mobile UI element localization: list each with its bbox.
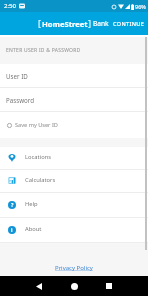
staticText: [ xyxy=(38,17,42,30)
staticText: Calculators xyxy=(25,176,56,184)
button[interactable]: Save my User ID xyxy=(0,112,148,138)
staticText: ? xyxy=(11,202,14,209)
staticText: HomeStreet xyxy=(42,19,88,29)
button[interactable]: Calculators xyxy=(0,170,148,193)
staticText: CONTINUE xyxy=(113,20,145,27)
button[interactable]: Password xyxy=(0,88,148,112)
staticText: About xyxy=(25,225,42,233)
button[interactable]: Locations xyxy=(0,147,148,170)
staticText: ENTER USER ID & PASSWORD xyxy=(6,47,81,54)
button[interactable]: User ID xyxy=(0,64,148,88)
staticText: i xyxy=(11,227,13,234)
button[interactable]: CONTINUE xyxy=(110,12,148,35)
staticText: 96% xyxy=(135,3,146,10)
staticText: ] xyxy=(88,17,92,30)
staticText: Bank xyxy=(93,19,109,28)
staticText: Locations xyxy=(25,153,52,161)
staticText: User ID xyxy=(6,72,28,80)
button[interactable]: ? xyxy=(0,193,148,218)
button[interactable]: Recent apps xyxy=(102,279,116,293)
staticText: Save my User ID xyxy=(15,121,58,129)
button[interactable]: Back xyxy=(32,279,46,293)
button[interactable]: Home xyxy=(67,279,81,293)
button[interactable]: Privacy Policy xyxy=(55,264,93,272)
staticText: Help xyxy=(25,200,38,208)
staticText: 2:50 xyxy=(4,2,16,10)
button[interactable]: i xyxy=(0,218,148,243)
staticText: Password xyxy=(6,96,34,104)
